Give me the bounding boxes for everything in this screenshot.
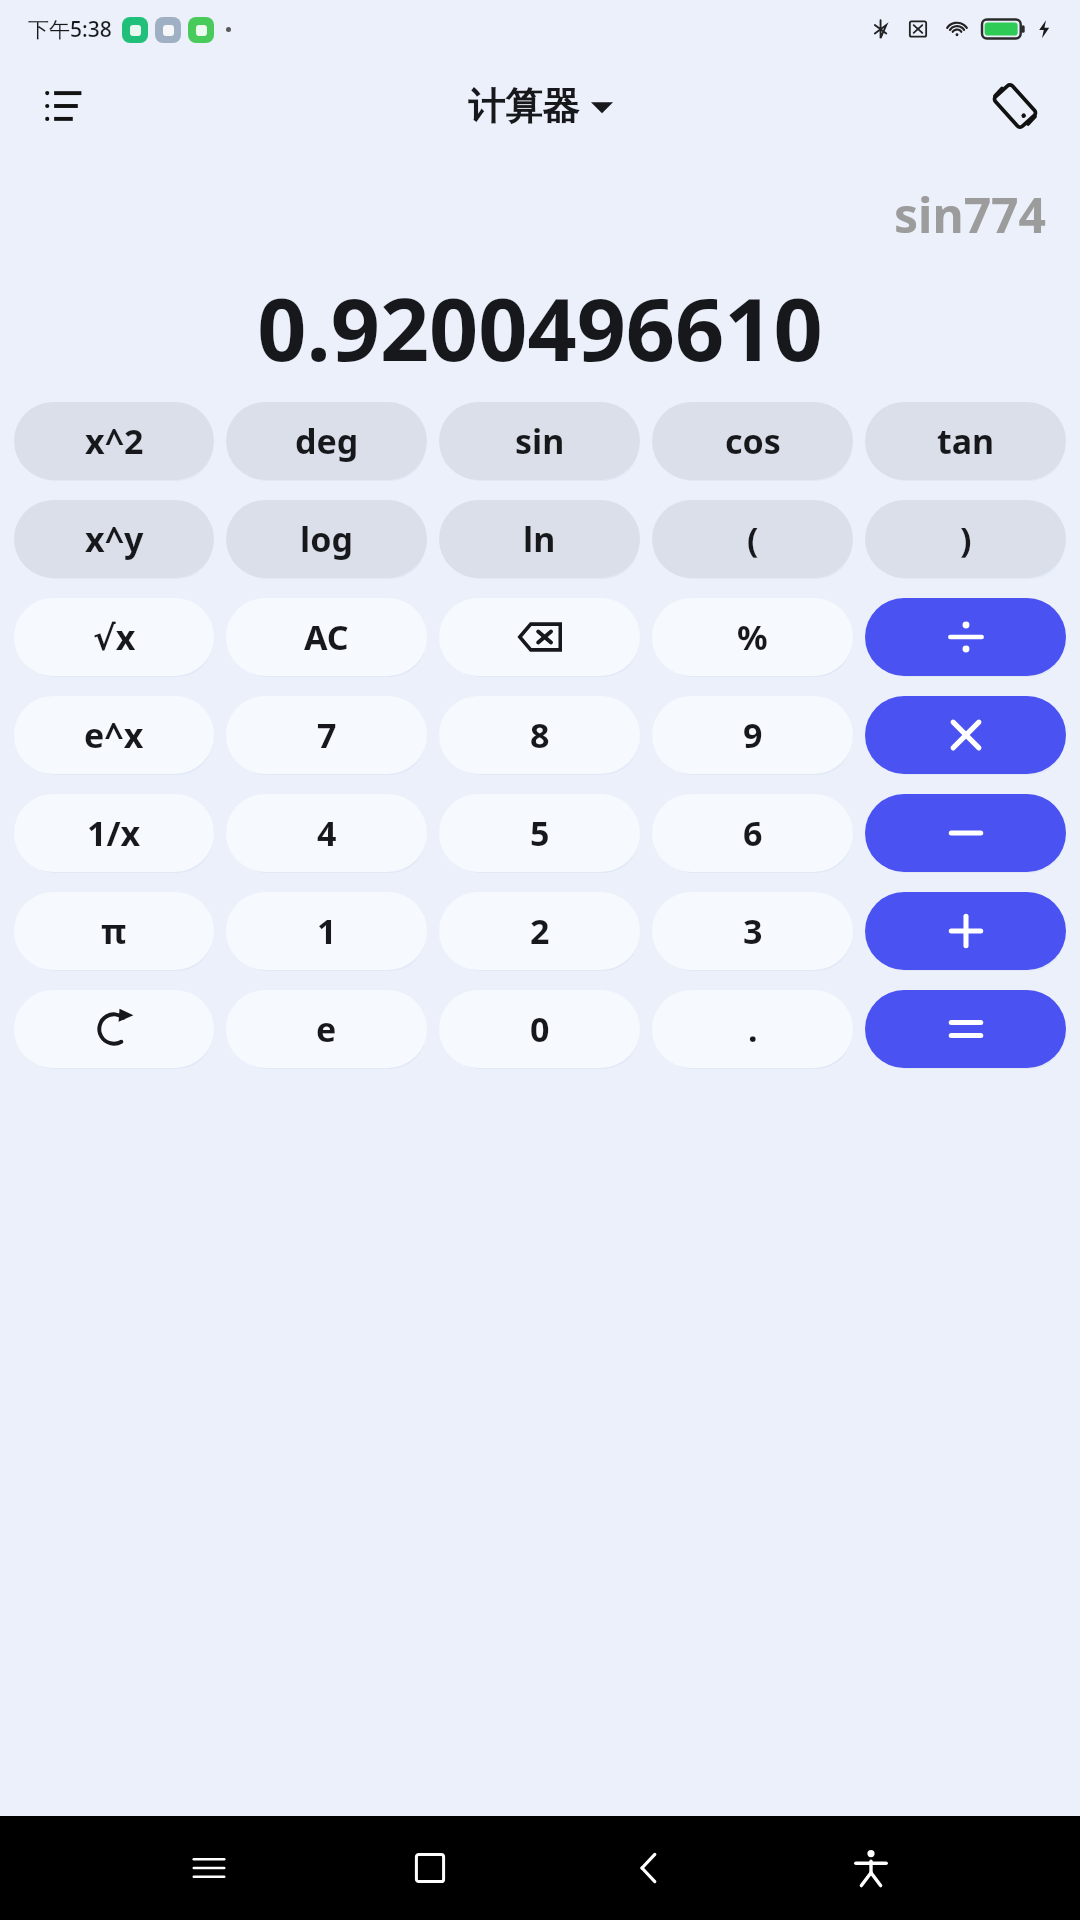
staticText: 4 — [317, 810, 337, 856]
staticText: sin — [515, 418, 565, 464]
button[interactable]: e^x — [14, 696, 214, 774]
button[interactable]: Multiply — [865, 696, 1066, 774]
staticText: sin774 — [34, 182, 1046, 247]
button[interactable]: Rotate screen — [984, 75, 1046, 137]
staticText: 1 — [317, 908, 337, 954]
button[interactable]: 3 — [652, 892, 853, 970]
staticText: AC — [304, 614, 349, 660]
button[interactable]: 计算器 — [468, 83, 613, 130]
button[interactable]: % — [652, 598, 853, 676]
staticText: x^2 — [85, 418, 144, 464]
staticText: 5 — [530, 810, 550, 856]
button[interactable]: 2 — [439, 892, 640, 970]
staticText: x^y — [85, 516, 144, 562]
button[interactable]: Add — [865, 892, 1066, 970]
button[interactable]: Equals — [865, 990, 1066, 1068]
button[interactable]: Home — [392, 1830, 468, 1906]
button[interactable]: ( — [652, 500, 853, 578]
button[interactable]: . — [652, 990, 853, 1068]
button[interactable]: Backspace — [439, 598, 640, 676]
staticText: 8 — [530, 712, 550, 758]
button[interactable]: ) — [865, 500, 1066, 578]
staticText: ) — [960, 516, 972, 562]
staticText: 0 — [530, 1006, 550, 1052]
button[interactable]: tan — [865, 402, 1066, 480]
button[interactable]: sin — [439, 402, 640, 480]
button[interactable]: ln — [439, 500, 640, 578]
staticText: % — [737, 614, 768, 660]
staticText: . — [748, 1006, 758, 1052]
staticText: tan — [937, 418, 995, 464]
staticText: 0.9200496610 — [34, 269, 1046, 386]
staticText: cos — [725, 418, 781, 464]
button[interactable]: History — [36, 75, 98, 137]
staticText: 1/x — [87, 810, 141, 856]
staticText: 3 — [743, 908, 763, 954]
button[interactable]: 7 — [226, 696, 427, 774]
button[interactable]: Divide — [865, 598, 1066, 676]
staticText: 计算器 — [468, 83, 579, 130]
button[interactable]: 6 — [652, 794, 853, 872]
button[interactable]: deg — [226, 402, 427, 480]
button[interactable]: 8 — [439, 696, 640, 774]
button[interactable]: cos — [652, 402, 853, 480]
staticText: 9 — [743, 712, 763, 758]
button[interactable]: √x — [14, 598, 214, 676]
staticText: √x — [93, 614, 136, 660]
staticText: deg — [295, 418, 359, 464]
staticText: 下午5:38 — [28, 15, 112, 44]
staticText: log — [300, 516, 353, 562]
button[interactable]: π — [14, 892, 214, 970]
button[interactable]: 4 — [226, 794, 427, 872]
staticText: π — [101, 908, 127, 954]
button[interactable]: AC — [226, 598, 427, 676]
button[interactable]: 1/x — [14, 794, 214, 872]
button[interactable]: Subtract — [865, 794, 1066, 872]
staticText: 7 — [317, 712, 337, 758]
staticText: e — [316, 1006, 337, 1052]
button[interactable]: 0 — [439, 990, 640, 1068]
button[interactable]: x^y — [14, 500, 214, 578]
button[interactable]: 5 — [439, 794, 640, 872]
button[interactable]: Reset — [14, 990, 214, 1068]
staticText: ( — [747, 516, 759, 562]
staticText: ln — [523, 516, 556, 562]
button[interactable]: Back — [612, 1830, 688, 1906]
staticText: e^x — [84, 712, 144, 758]
staticText: 2 — [530, 908, 550, 954]
button[interactable]: Recents — [171, 1830, 247, 1906]
button[interactable]: Accessibility — [833, 1830, 909, 1906]
button[interactable]: log — [226, 500, 427, 578]
button[interactable]: x^2 — [14, 402, 214, 480]
button[interactable]: 1 — [226, 892, 427, 970]
button[interactable]: e — [226, 990, 427, 1068]
button[interactable]: 9 — [652, 696, 853, 774]
staticText: 6 — [743, 810, 763, 856]
